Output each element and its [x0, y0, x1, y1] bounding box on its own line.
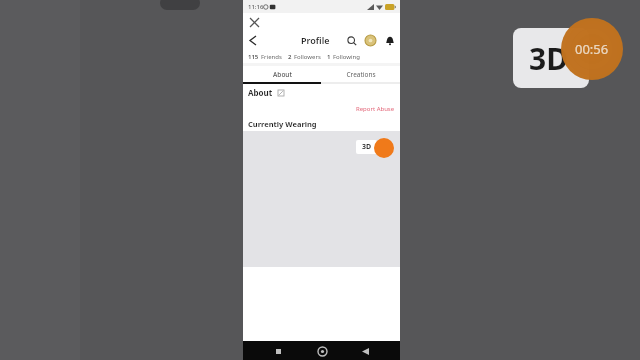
staticText: Friends: [261, 53, 282, 61]
staticText: Currently Wearing: [248, 119, 317, 129]
button[interactable]: Report Abuse: [356, 105, 395, 113]
staticText: 00:56: [575, 40, 609, 58]
button[interactable]: Recents: [269, 342, 287, 360]
staticText: Following: [333, 53, 361, 61]
staticText: Report Abuse: [356, 105, 395, 113]
button[interactable]: Back: [246, 33, 260, 47]
button[interactable]: Timer: [374, 138, 394, 158]
button[interactable]: Creations: [321, 66, 400, 82]
button[interactable]: Close: [247, 15, 261, 29]
button[interactable]: Timer 00:56: [561, 18, 623, 80]
staticText: 115: [248, 53, 259, 61]
button[interactable]: 2: [288, 53, 321, 61]
button[interactable]: Search: [344, 33, 359, 48]
staticText: Followers: [294, 53, 321, 61]
button[interactable]: Notifications: [382, 33, 397, 48]
staticText: Profile: [301, 34, 330, 46]
staticText: 11:16: [248, 3, 264, 11]
button[interactable]: Back: [356, 342, 374, 360]
staticText: Creations: [346, 70, 376, 79]
button[interactable]: 115: [248, 53, 282, 61]
staticText: About: [248, 87, 273, 98]
staticText: About: [273, 70, 292, 79]
staticText: 3D: [529, 38, 569, 79]
button[interactable]: 3D: [513, 28, 589, 88]
button[interactable]: About: [243, 66, 321, 82]
staticText: 2: [288, 53, 292, 61]
button[interactable]: 1: [327, 53, 361, 61]
button[interactable]: Home: [313, 342, 331, 360]
button[interactable]: Edit about: [276, 88, 285, 97]
button[interactable]: 3D: [356, 140, 377, 154]
staticText: 1: [327, 53, 331, 61]
staticText: 3D: [362, 142, 372, 152]
button[interactable]: Currency: [363, 33, 378, 48]
